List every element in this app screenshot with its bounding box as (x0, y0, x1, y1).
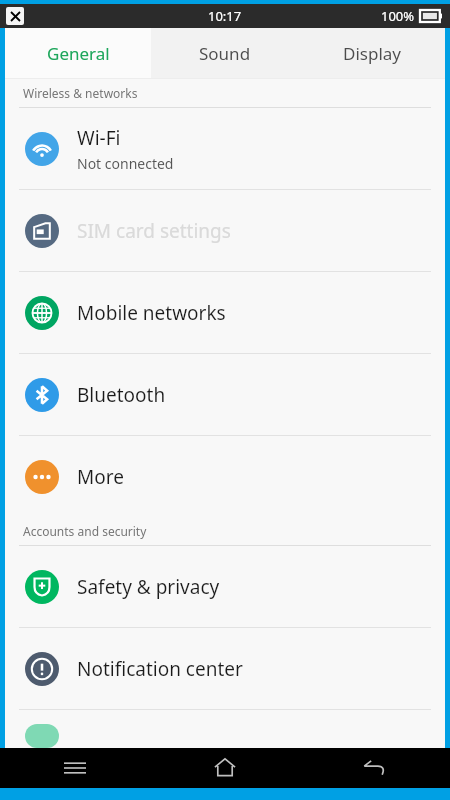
button[interactable]: Safety & privacy (5, 546, 445, 627)
button[interactable]: Bluetooth (5, 354, 445, 435)
staticText: Accounts and security (23, 523, 147, 539)
staticText: General (47, 42, 110, 65)
button[interactable]: SIM card settings (5, 190, 445, 271)
staticText: Notification center (77, 656, 243, 682)
staticText: Safety & privacy (77, 574, 220, 600)
button[interactable]: Sound (151, 28, 298, 78)
staticText: Display (343, 42, 401, 65)
staticText: 10:17 (208, 7, 242, 25)
staticText: More (77, 464, 124, 490)
button[interactable]: General (5, 28, 151, 78)
staticText: Not connected (77, 154, 174, 173)
staticText: Wi-Fi (77, 125, 121, 151)
button[interactable]: Menu (0, 748, 150, 788)
staticText: 100% (381, 7, 415, 25)
staticText: Mobile networks (77, 300, 226, 326)
button[interactable]: Display (298, 28, 445, 78)
staticText: Sound (199, 42, 251, 65)
button[interactable]: Close (6, 7, 24, 25)
button[interactable]: Back (300, 748, 450, 788)
staticText: Bluetooth (77, 382, 166, 408)
button[interactable]: More (5, 436, 445, 517)
button[interactable]: Wi-Fi (5, 108, 445, 189)
staticText: Wireless & networks (23, 85, 138, 101)
button[interactable]: Home (150, 748, 300, 788)
button[interactable]: Mobile networks (5, 272, 445, 353)
staticText: SIM card settings (77, 218, 231, 244)
button[interactable]: Notification center (5, 628, 445, 709)
